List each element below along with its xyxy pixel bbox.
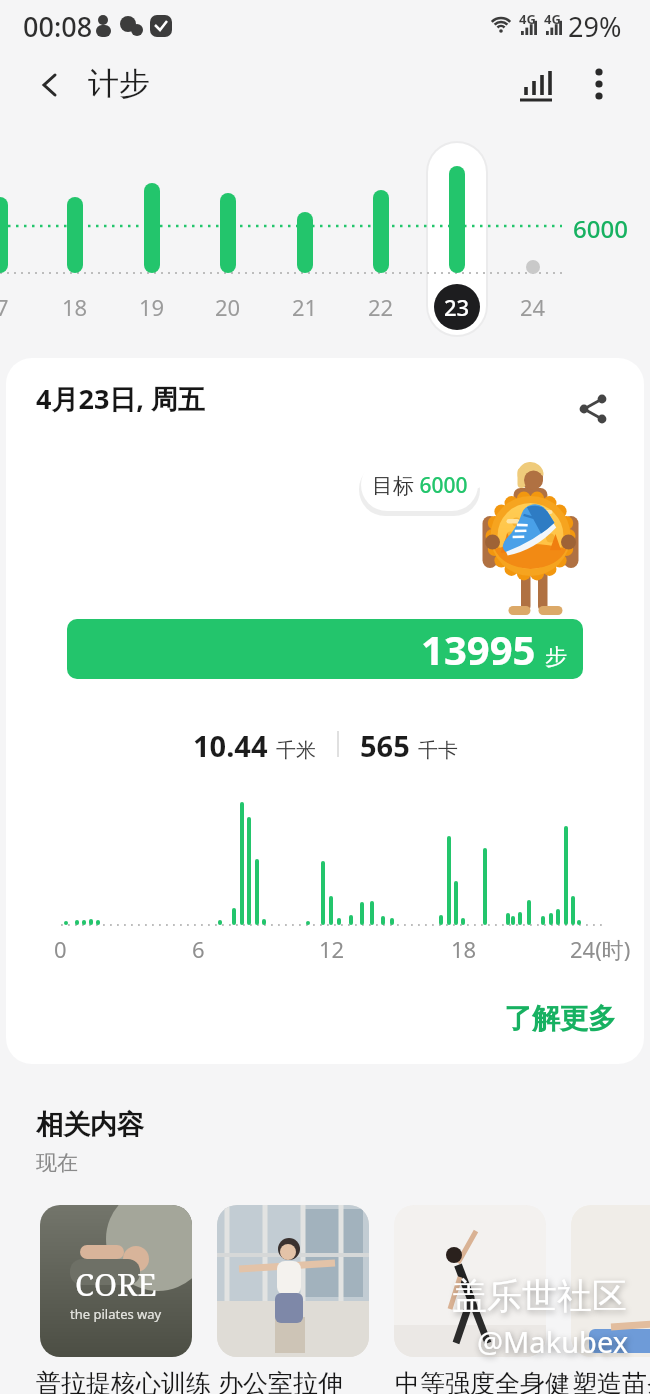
staticText: 办公室拉伸 <box>218 1368 343 1394</box>
staticText: 计步 <box>88 64 150 103</box>
staticText: 20 <box>215 292 241 322</box>
staticText: 19 <box>139 292 165 322</box>
staticText: 10.44 <box>193 726 268 765</box>
staticText: 普拉提核心训练 <box>36 1368 211 1394</box>
staticText: 目标 6000 <box>372 471 468 500</box>
button[interactable] <box>576 58 622 104</box>
staticText: 13995 <box>421 622 536 676</box>
staticText: 4月23日, 周五 <box>36 380 206 417</box>
staticText: 千米 <box>276 738 316 763</box>
staticText: 18 <box>451 934 477 964</box>
button[interactable]: 目标 6000 <box>361 459 478 511</box>
staticText: 步 <box>545 643 567 671</box>
staticText: 24(时) <box>570 934 631 964</box>
staticText: 现在 <box>36 1150 78 1176</box>
staticText: 4G <box>519 10 536 28</box>
staticText: CORE <box>75 1263 157 1305</box>
staticText: 6 <box>192 934 205 964</box>
staticText: 00:08 <box>23 8 93 45</box>
button[interactable]: 了解更多 <box>504 1001 616 1036</box>
button[interactable] <box>571 387 615 431</box>
staticText: @Makubex <box>477 1322 629 1361</box>
button[interactable] <box>28 63 72 107</box>
button[interactable] <box>508 58 564 114</box>
staticText: 0 <box>54 934 67 964</box>
staticText: 29% <box>568 8 622 45</box>
staticText: 塑造苗条 <box>572 1368 650 1394</box>
staticText: the pilates way <box>70 1305 162 1323</box>
staticText: 7 <box>0 292 9 322</box>
staticText: 6000 <box>573 212 628 245</box>
staticText: 23 <box>444 292 470 322</box>
staticText: 中等强度全身健 <box>395 1368 570 1394</box>
staticText: 相关内容 <box>36 1108 144 1142</box>
staticText: 盖乐世社区 <box>452 1274 627 1318</box>
button[interactable] <box>571 1205 650 1357</box>
button[interactable] <box>217 1205 369 1357</box>
button[interactable]: CORE <box>40 1205 192 1357</box>
staticText: 4G <box>544 10 561 28</box>
staticText: 21 <box>292 292 318 322</box>
staticText: 565 <box>360 726 410 765</box>
staticText: 18 <box>62 292 88 322</box>
button[interactable]: 13995 <box>67 619 583 679</box>
button[interactable] <box>394 1205 546 1357</box>
staticText: 22 <box>368 292 394 322</box>
staticText: 12 <box>319 934 345 964</box>
staticText: 24 <box>520 292 546 322</box>
button[interactable] <box>428 143 486 335</box>
staticText: 千卡 <box>418 738 458 763</box>
